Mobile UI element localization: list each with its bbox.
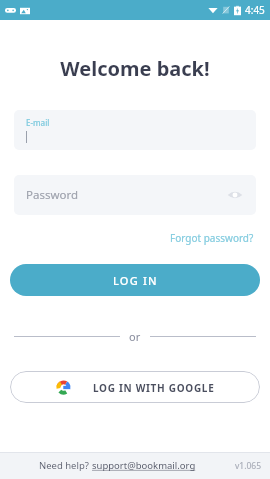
staticText: support@bookmail.org [92, 459, 196, 472]
staticText: Need help? [39, 459, 92, 472]
staticText: 4:45 [245, 3, 265, 17]
button[interactable]: E-mail [14, 110, 256, 150]
button[interactable]: LOG IN WITH GOOGLE [10, 371, 260, 403]
staticText: E-mail [26, 117, 50, 128]
button[interactable]: Forgot password? [168, 229, 256, 247]
button[interactable]: LOG IN [10, 264, 260, 296]
button[interactable]: Password [14, 175, 256, 215]
staticText: v1.065 [235, 460, 262, 472]
staticText: or [129, 329, 141, 344]
staticText: Forgot password? [170, 231, 254, 245]
button[interactable]: Show password [224, 184, 246, 206]
staticText: Welcome back! [0, 55, 270, 82]
button[interactable]: support@bookmail.org [92, 459, 196, 472]
staticText: LOG IN WITH GOOGLE [93, 381, 215, 395]
staticText: Password [26, 187, 79, 203]
staticText: LOG IN [113, 273, 158, 288]
